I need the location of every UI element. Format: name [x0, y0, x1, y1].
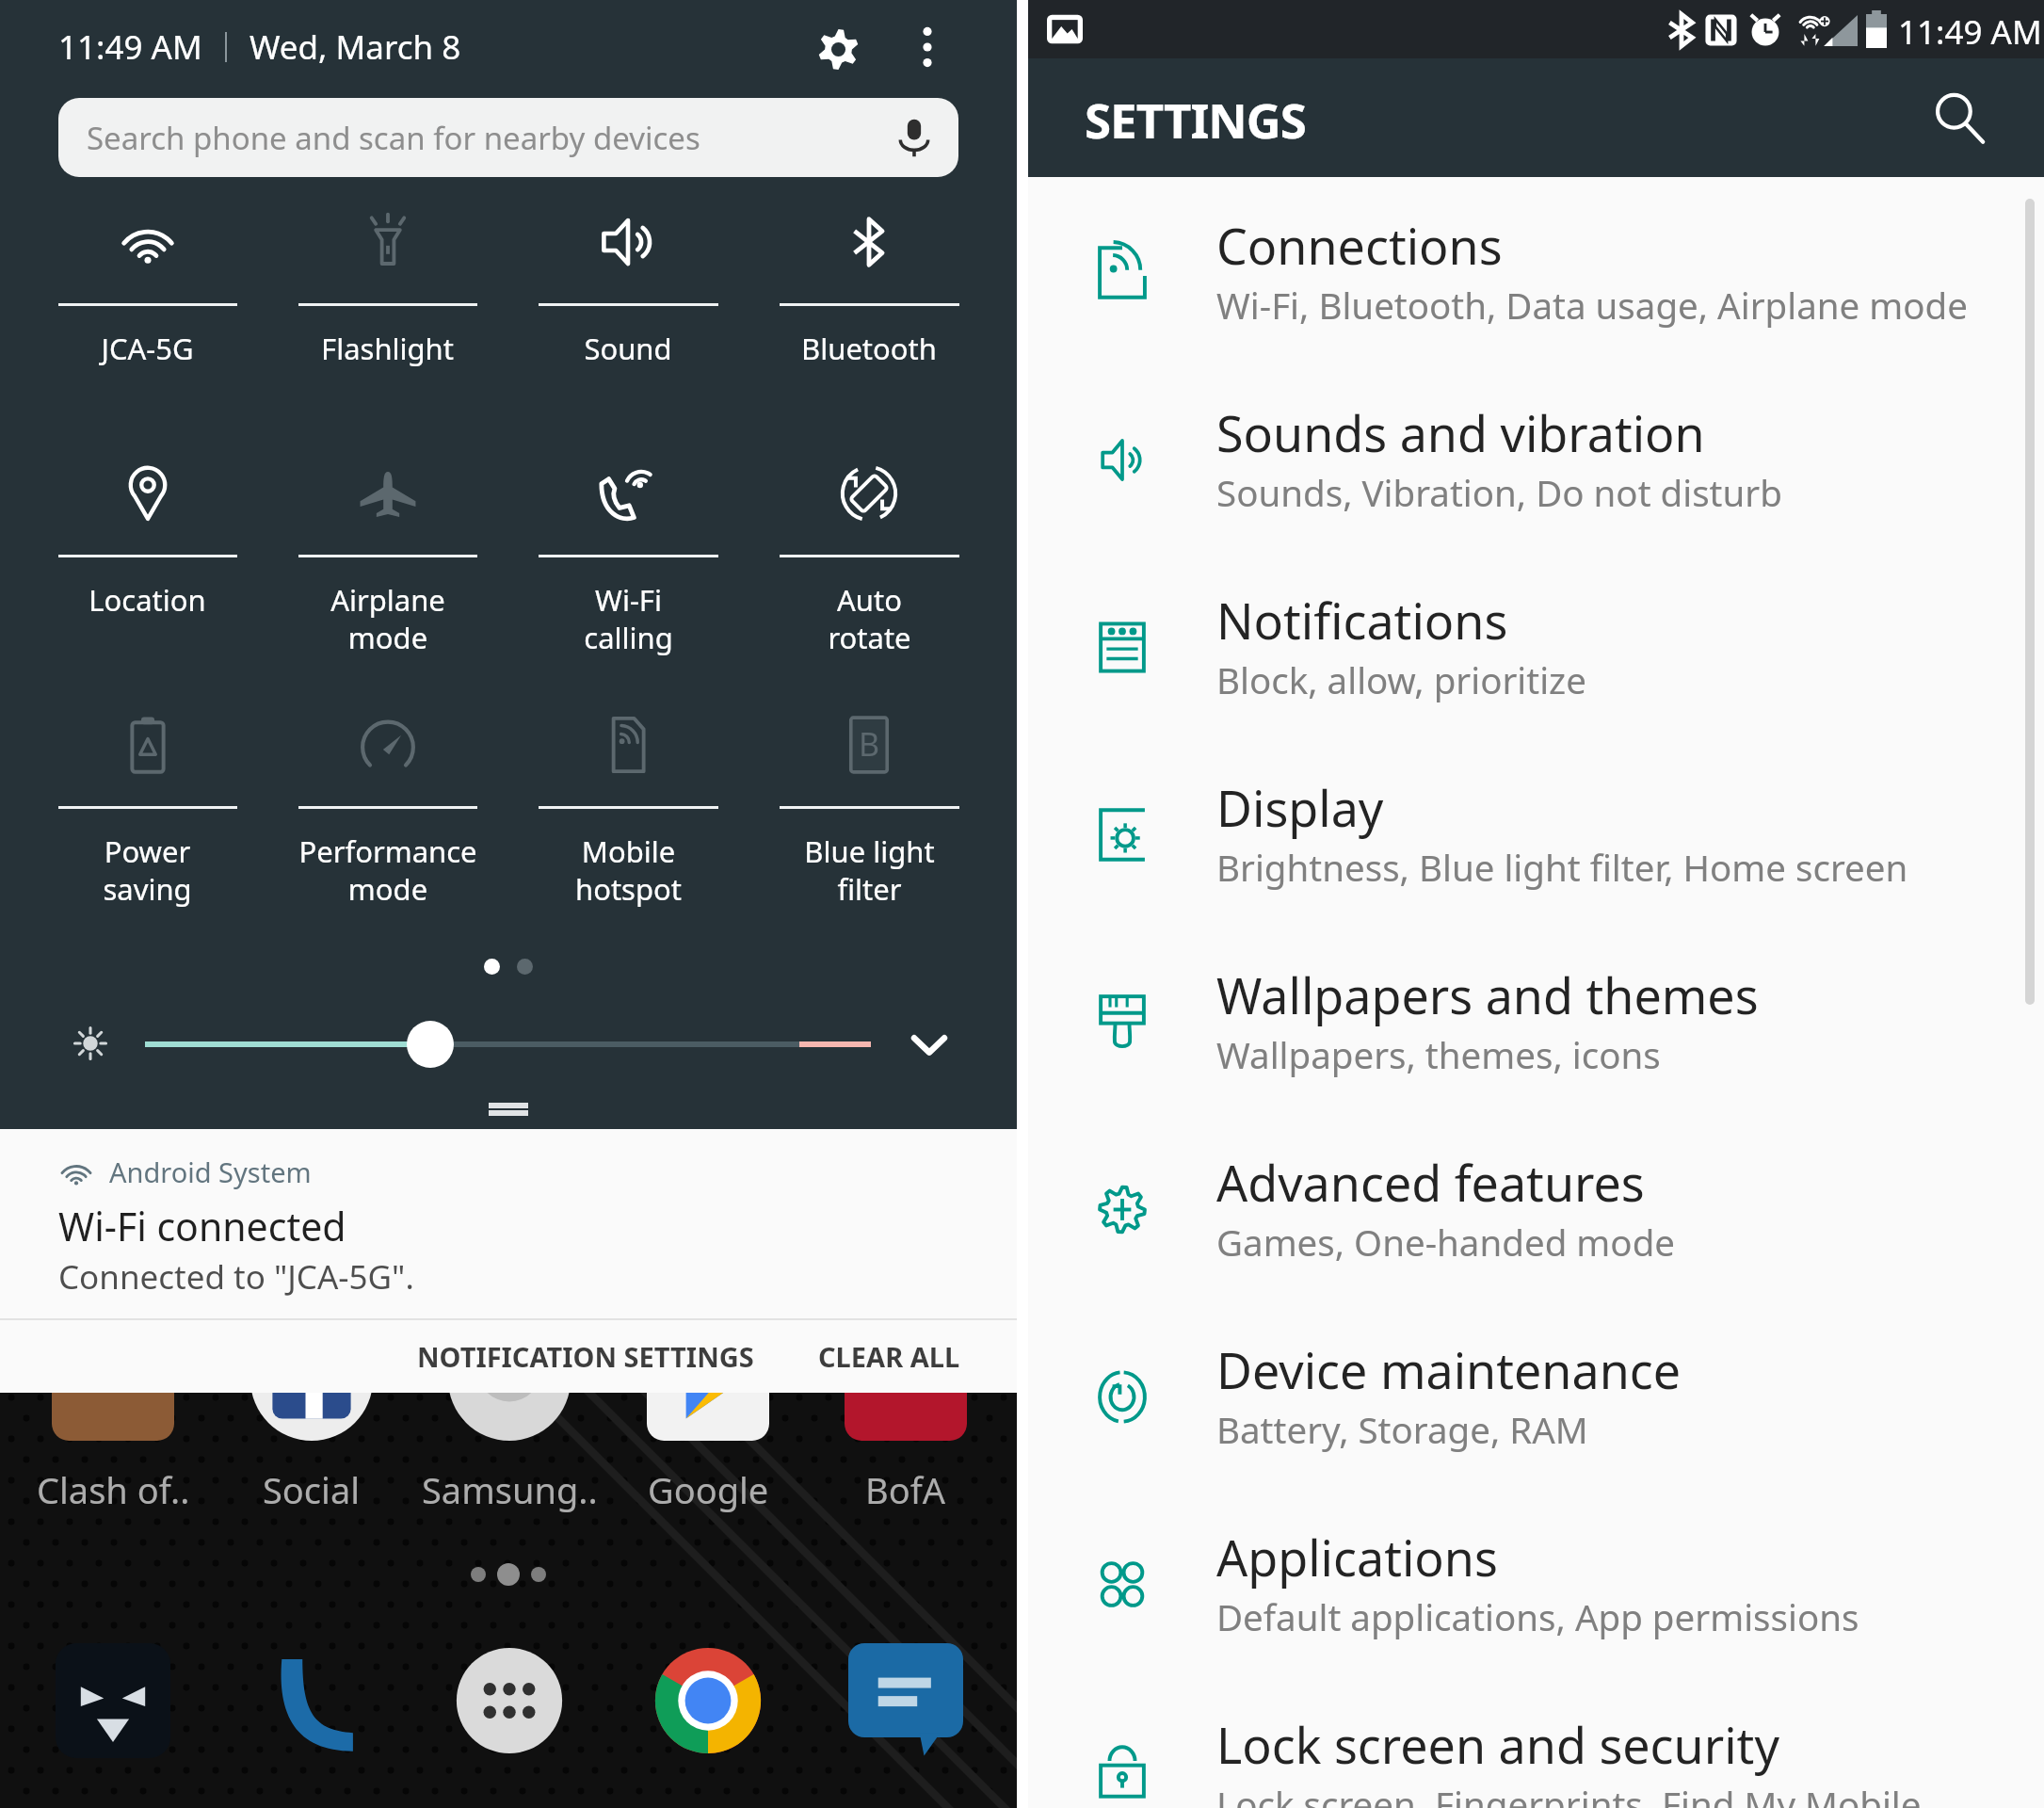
button[interactable]: Mobile hotspot — [507, 713, 748, 909]
button[interactable]: Power saving — [27, 713, 267, 909]
staticText: Sounds, Vibration, Do not disturb — [1216, 468, 1782, 517]
staticText: Lock screen, Fingerprints, Find My Mobil… — [1216, 1780, 1922, 1808]
button[interactable]: Phone — [241, 1630, 382, 1771]
button[interactable]: NOTIFICATION SETTINGS — [396, 1320, 775, 1393]
staticText: Sound — [584, 329, 672, 368]
staticText: Display — [1216, 774, 1384, 841]
staticText: Wi-Fi calling — [584, 580, 673, 657]
button[interactable]: Bluetooth — [748, 210, 990, 368]
button[interactable]: Brightness — [62, 1015, 119, 1072]
button[interactable]: Apps — [439, 1630, 580, 1771]
button[interactable]: Chrome — [637, 1630, 779, 1771]
staticText: Wi-Fi connected — [58, 1200, 346, 1252]
staticText: BofA — [865, 1465, 946, 1514]
staticText: Wallpapers and themes — [1216, 961, 1759, 1028]
button[interactable]: More options — [887, 7, 968, 88]
staticText: Default applications, App permissions — [1216, 1592, 1859, 1641]
staticText: Social — [263, 1465, 361, 1514]
staticText: JCA-5G — [101, 329, 194, 368]
button[interactable]: Connections — [1028, 177, 2044, 364]
staticText: B — [859, 722, 880, 766]
staticText: Device maintenance — [1216, 1336, 1682, 1403]
button[interactable]: Social — [213, 1318, 410, 1507]
staticText: Wed, March 8 — [249, 24, 461, 70]
staticText: CLEAR ALL — [818, 1338, 960, 1375]
staticText: Mobile hotspot — [575, 831, 682, 909]
button[interactable]: Wi-Fi calling — [507, 461, 748, 657]
staticText: Airplane mode — [330, 580, 445, 657]
staticText: Wallpapers, themes, icons — [1216, 1030, 1661, 1079]
staticText: Block, allow, prioritize — [1216, 655, 1586, 704]
button[interactable]: Flashlight — [267, 210, 507, 368]
staticText: NOTIFICATION SETTINGS — [417, 1338, 754, 1375]
staticText: Android System — [109, 1154, 312, 1190]
staticText: Power saving — [103, 831, 192, 909]
button[interactable]: Clash of.. — [14, 1318, 212, 1507]
staticText: Advanced features — [1216, 1149, 1645, 1216]
staticText: Blue light filter — [804, 831, 935, 909]
staticText: Wi-Fi, Bluetooth, Data usage, Airplane m… — [1216, 281, 1968, 330]
staticText: Games, One-handed mode — [1216, 1218, 1676, 1267]
button[interactable]: Settings — [806, 7, 887, 88]
staticText: Samsung.. — [422, 1465, 598, 1514]
staticText: SETTINGS — [1085, 87, 1306, 152]
button[interactable]: Airplane mode — [267, 461, 507, 657]
button[interactable]: Search phone and scan for nearby devices — [58, 98, 958, 177]
staticText: Battery, Storage, RAM — [1216, 1405, 1588, 1454]
button[interactable]: Device maintenance — [1028, 1301, 2044, 1489]
staticText: 11:49 AM — [58, 24, 202, 70]
button[interactable]: Expand quick settings — [892, 1008, 967, 1083]
staticText: Flashlight — [321, 329, 454, 368]
button[interactable]: Advanced features — [1028, 1114, 2044, 1301]
staticText: Bluetooth — [801, 329, 937, 368]
button[interactable]: Brightness slider — [145, 1021, 871, 1068]
button[interactable]: Notifications — [1028, 552, 2044, 739]
button[interactable]: BofA — [807, 1318, 1005, 1507]
button[interactable]: Applications — [1028, 1489, 2044, 1676]
button[interactable]: Sound — [507, 210, 748, 368]
staticText: Clash of.. — [37, 1465, 190, 1514]
button[interactable]: Wallpapers and themes — [1028, 927, 2044, 1114]
staticText: Sounds and vibration — [1216, 399, 1705, 466]
staticText: Notifications — [1216, 587, 1508, 654]
button[interactable]: Search — [1914, 73, 2004, 163]
button[interactable]: Performance mode — [267, 713, 507, 909]
staticText: Location — [89, 580, 206, 620]
staticText: Auto rotate — [828, 580, 911, 657]
button[interactable]: JCA-5G — [27, 210, 267, 368]
staticText: Search phone and scan for nearby devices — [87, 117, 700, 159]
button[interactable]: B — [748, 713, 990, 909]
staticText: 11:49 AM — [1898, 9, 2042, 55]
button[interactable]: Game — [42, 1630, 184, 1771]
staticText: Lock screen and security — [1216, 1711, 1779, 1778]
button[interactable]: Google — [609, 1318, 807, 1507]
staticText: Applications — [1216, 1524, 1498, 1590]
button[interactable]: Sounds and vibration — [1028, 364, 2044, 552]
button[interactable]: Location — [27, 461, 267, 620]
button[interactable]: Messages — [835, 1630, 976, 1771]
button[interactable]: Auto rotate — [748, 461, 990, 657]
staticText: Connections — [1216, 212, 1503, 279]
button[interactable]: Display — [1028, 739, 2044, 927]
staticText: Connected to "JCA-5G". — [58, 1254, 414, 1299]
button[interactable]: CLEAR ALL — [797, 1320, 981, 1393]
button[interactable]: Samsung.. — [410, 1318, 608, 1507]
staticText: Brightness, Blue light filter, Home scre… — [1216, 843, 1908, 892]
button[interactable]: Lock screen and security — [1028, 1676, 2044, 1808]
staticText: Google — [648, 1465, 769, 1514]
staticText: Performance mode — [298, 831, 477, 909]
